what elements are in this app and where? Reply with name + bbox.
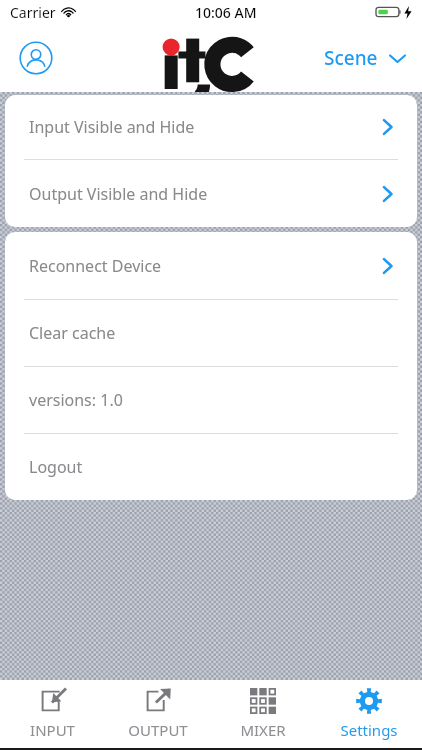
button[interactable]: Settings xyxy=(316,680,422,748)
button[interactable]: Logout xyxy=(5,434,417,500)
button[interactable]: Input Visible and Hide xyxy=(5,95,417,159)
staticText: versions: 1.0 xyxy=(29,389,123,411)
button[interactable]: Profile xyxy=(14,36,58,80)
staticText: Settings xyxy=(340,720,398,740)
staticText: Output Visible and Hide xyxy=(29,183,208,205)
staticText: Carrier xyxy=(10,3,56,22)
button[interactable]: INPUT xyxy=(0,680,105,748)
button[interactable]: versions: 1.0 xyxy=(5,367,417,433)
staticText: OUTPUT xyxy=(128,720,188,740)
staticText: INPUT xyxy=(30,720,75,740)
staticText: MIXER xyxy=(240,720,286,740)
button[interactable]: Output Visible and Hide xyxy=(5,160,417,227)
staticText: Reconnect Device xyxy=(29,255,162,277)
button[interactable]: Reconnect Device xyxy=(5,232,417,299)
staticText: Scene xyxy=(324,45,378,71)
staticText: Logout xyxy=(29,456,83,478)
button[interactable]: Scene xyxy=(318,37,412,79)
staticText: Clear cache xyxy=(29,322,116,344)
button[interactable]: OUTPUT xyxy=(105,680,210,748)
staticText: Input Visible and Hide xyxy=(29,116,195,138)
button[interactable]: MIXER xyxy=(210,680,316,748)
button[interactable]: Clear cache xyxy=(5,300,417,366)
staticText: 10:06 AM xyxy=(195,3,257,22)
